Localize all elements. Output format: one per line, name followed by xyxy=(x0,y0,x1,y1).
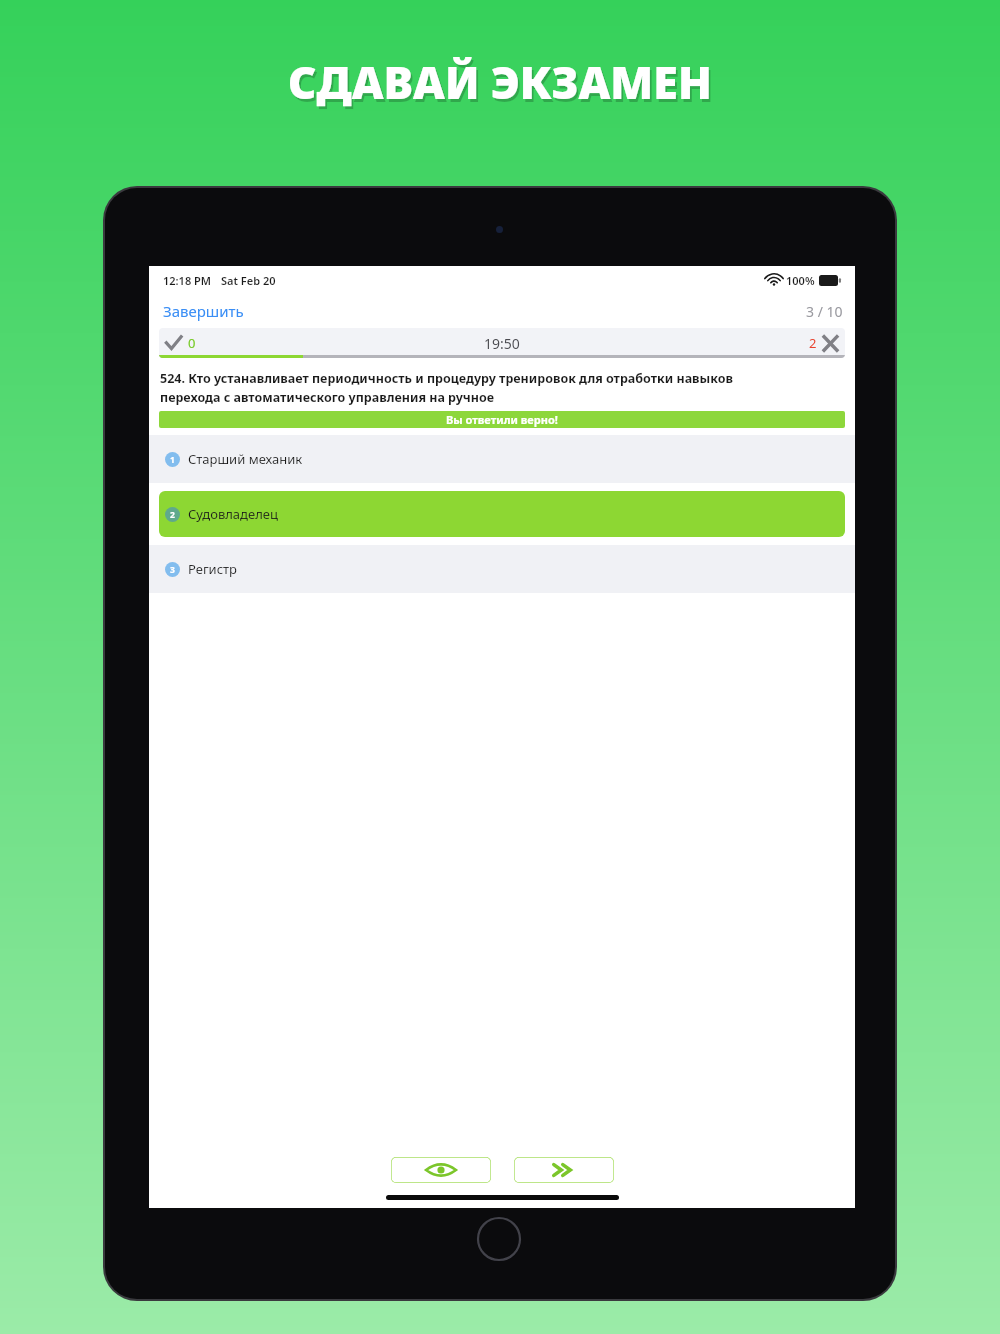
staticText: СДАВАЙ ЭКЗАМЕН xyxy=(290,55,714,115)
staticText: 3 / 10 xyxy=(806,302,843,321)
button[interactable]: Завершить xyxy=(161,298,246,324)
staticText: 100% xyxy=(786,273,815,288)
staticText: Регистр xyxy=(188,560,238,578)
staticText: СДАВАЙ ЭКЗАМЕН xyxy=(288,52,712,112)
staticText: 19:50 xyxy=(484,334,520,353)
button[interactable]: 2 xyxy=(159,491,845,537)
staticText: Судовладелец xyxy=(188,505,278,523)
button[interactable]: Показать ответ xyxy=(391,1157,491,1183)
staticText: 524. Кто устанавливает периодичность и п… xyxy=(160,370,733,387)
staticText: Sat Feb 20 xyxy=(221,273,276,288)
button[interactable]: Следующий вопрос xyxy=(514,1157,614,1183)
staticText: Старший механик xyxy=(188,450,303,468)
staticText: 2 xyxy=(170,509,175,521)
staticText: 12:18 PM xyxy=(163,273,212,288)
staticText: 3 xyxy=(170,564,175,576)
staticText: перехода с автоматического управления на… xyxy=(160,389,495,406)
button[interactable]: 3 xyxy=(149,545,855,593)
staticText: 2 xyxy=(809,334,817,352)
staticText: 1 xyxy=(170,454,175,466)
button[interactable]: 1 xyxy=(149,435,855,483)
staticText: Вы ответили верно! xyxy=(446,412,558,427)
staticText: 0 xyxy=(188,334,196,352)
staticText: Завершить xyxy=(163,301,244,321)
